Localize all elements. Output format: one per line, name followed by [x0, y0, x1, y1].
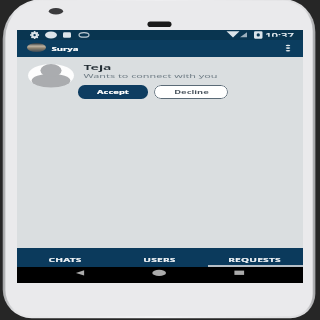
button[interactable]: Teja [17, 57, 303, 105]
staticText: Surya [51, 46, 79, 53]
staticText: Accept [97, 89, 129, 96]
button[interactable]: Decline [154, 85, 228, 99]
button[interactable]: CHATS [17, 248, 112, 267]
staticText: CHATS [48, 256, 82, 264]
button[interactable]: USERS [112, 248, 207, 267]
staticText: USERS [143, 256, 176, 264]
button[interactable]: Recents [224, 267, 254, 283]
staticText: Wants to connect with you [83, 71, 218, 80]
button[interactable]: Home [144, 267, 174, 283]
button[interactable]: Accept [78, 85, 148, 99]
staticText: 10:37 [265, 31, 294, 37]
button[interactable]: REQUESTS [207, 248, 302, 267]
staticText: Decline [174, 89, 209, 96]
staticText: Teja [83, 63, 112, 72]
button[interactable]: Back [65, 267, 95, 283]
button[interactable]: More options [280, 40, 296, 57]
staticText: REQUESTS [228, 256, 281, 264]
